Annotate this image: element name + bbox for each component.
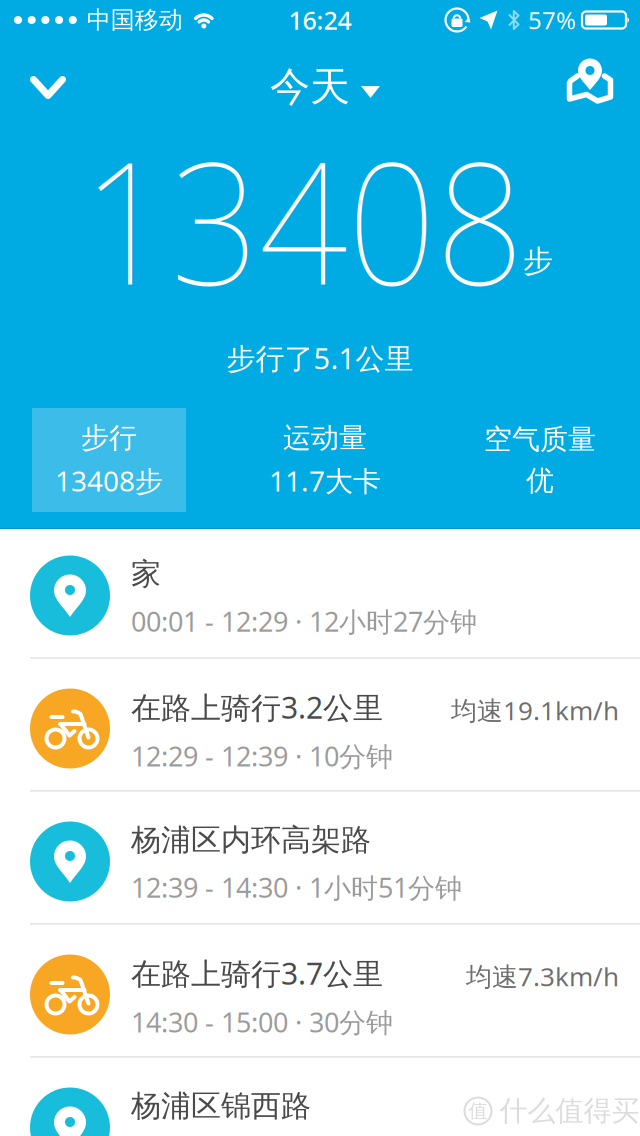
staticText: 空气质量 <box>484 422 596 457</box>
staticText: 11.7大卡 <box>269 462 381 500</box>
staticText: 家 <box>131 555 161 593</box>
staticText: 00:01 - 12:29 · 12小时27分钟 <box>131 603 477 640</box>
staticText: 运动量 <box>283 420 367 456</box>
staticText: 16:24 <box>288 3 351 37</box>
staticText: 中国移动 <box>87 5 183 35</box>
staticText: 57% <box>528 4 576 36</box>
staticText: 什么值得买 <box>499 1093 639 1129</box>
button[interactable]: 在路上骑行3.2公里 <box>0 662 640 795</box>
button[interactable]: Close <box>18 63 78 110</box>
button[interactable]: 步行 <box>32 408 186 512</box>
button[interactable]: 杨浦区内环高架路 <box>0 795 640 928</box>
staticText: 杨浦区内环高架路 <box>131 821 371 859</box>
button[interactable]: 运动量 <box>248 408 402 512</box>
staticText: 均速7.3km/h <box>466 958 619 994</box>
staticText: 今天 <box>270 62 350 112</box>
staticText: 12:39 - 14:30 · 1小时51分钟 <box>131 869 462 906</box>
staticText: 步 <box>523 242 553 280</box>
staticText: 13408步 <box>55 462 163 500</box>
button[interactable]: Map <box>558 51 621 111</box>
staticText: 14:30 - 15:00 · 30分钟 <box>131 1003 393 1040</box>
staticText: 优 <box>526 463 554 498</box>
staticText: 在路上骑行3.7公里 <box>131 953 383 994</box>
staticText: 值 <box>468 1099 487 1123</box>
staticText: 均速19.1km/h <box>451 692 619 728</box>
button[interactable]: 家 <box>0 529 640 662</box>
staticText: 杨浦区锦西路 <box>131 1087 311 1125</box>
button[interactable]: 在路上骑行3.7公里 <box>0 928 640 1061</box>
staticText: 步行 <box>81 420 137 456</box>
staticText: 步行了5.1公里 <box>226 338 413 378</box>
button[interactable]: 空气质量 <box>463 408 617 512</box>
button[interactable]: 今天 <box>270 62 380 112</box>
button[interactable]: 杨浦区锦西路 <box>0 1061 640 1136</box>
staticText: 12:29 - 12:39 · 10分钟 <box>131 737 393 774</box>
staticText: 在路上骑行3.2公里 <box>131 687 383 728</box>
staticText: 13408 <box>63 104 543 334</box>
